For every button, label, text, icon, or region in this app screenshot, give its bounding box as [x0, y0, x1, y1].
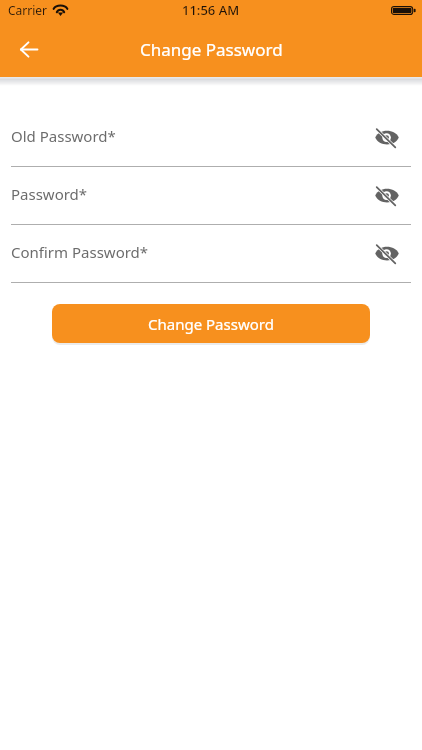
staticText: Old Password* [11, 126, 116, 146]
button[interactable]: Change Password [52, 304, 370, 343]
button[interactable]: Toggle password visibility [372, 239, 402, 269]
button[interactable]: Toggle password visibility [372, 181, 402, 211]
staticText: Password* [11, 184, 88, 204]
staticText: Change Password [148, 314, 274, 334]
staticText: 11:56 AM [182, 1, 240, 19]
staticText: Confirm Password* [11, 242, 149, 262]
button[interactable]: Toggle password visibility [372, 123, 402, 153]
staticText: Carrier [8, 2, 48, 18]
button[interactable]: Back [9, 30, 49, 68]
staticText: Change Password [140, 38, 283, 61]
